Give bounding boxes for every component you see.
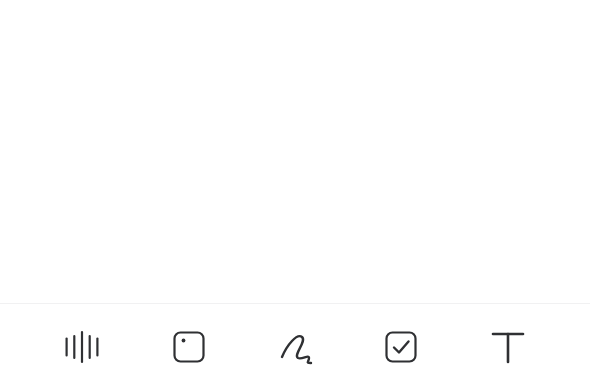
button[interactable]: Text: [484, 323, 532, 371]
button[interactable]: Checklist: [377, 323, 425, 371]
button[interactable]: Image: [165, 323, 213, 371]
button[interactable]: Audio: [58, 323, 106, 371]
button[interactable]: Draw: [271, 323, 319, 371]
